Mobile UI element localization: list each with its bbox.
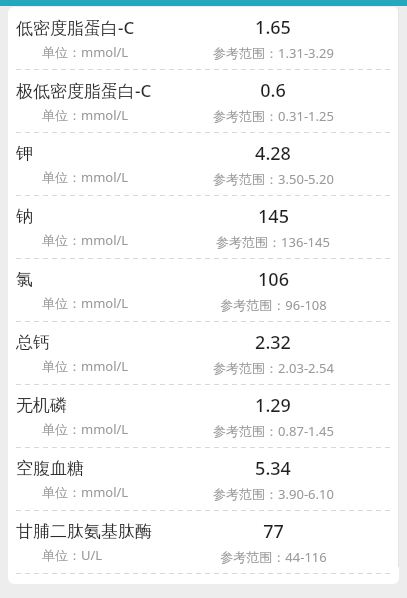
- staticText: 单位：mmol/L: [42, 231, 129, 249]
- staticText: 低密度脂蛋白-C: [16, 16, 135, 39]
- staticText: 参考范围：3.50-5.20: [213, 170, 334, 188]
- staticText: 单位：mmol/L: [42, 43, 129, 61]
- staticText: 参考范围：136-145: [216, 233, 330, 251]
- staticText: 单位：mmol/L: [42, 106, 129, 124]
- staticText: 参考范围：0.31-1.25: [213, 107, 334, 125]
- button[interactable]: 总钙: [8, 322, 399, 385]
- staticText: 5.34: [255, 456, 291, 481]
- button[interactable]: 氯: [8, 259, 399, 322]
- button[interactable]: 无机磷: [8, 385, 399, 448]
- staticText: 参考范围：96-108: [220, 296, 327, 314]
- staticText: 氯: [16, 269, 33, 290]
- button[interactable]: 钾: [8, 133, 399, 196]
- staticText: 0.6: [260, 78, 286, 103]
- staticText: 单位：U/L: [42, 546, 103, 564]
- staticText: 单位：mmol/L: [42, 420, 129, 438]
- staticText: 1.65: [255, 15, 291, 40]
- staticText: 空腹血糖: [16, 458, 84, 479]
- staticText: 单位：mmol/L: [42, 294, 129, 312]
- button[interactable]: 钠: [8, 196, 399, 259]
- staticText: 参考范围：2.03-2.54: [213, 359, 334, 377]
- staticText: 极低密度脂蛋白-C: [16, 79, 152, 102]
- button[interactable]: 极低密度脂蛋白-C: [8, 70, 399, 133]
- staticText: 参考范围：3.90-6.10: [213, 485, 334, 503]
- staticText: 参考范围：1.31-3.29: [213, 44, 334, 62]
- staticText: 1.29: [255, 393, 291, 418]
- button[interactable]: 低密度脂蛋白-C: [8, 7, 399, 70]
- staticText: 4.28: [255, 141, 291, 166]
- staticText: 钠: [16, 206, 33, 227]
- staticText: 总钙: [16, 332, 50, 353]
- staticText: 145: [258, 204, 289, 229]
- staticText: 甘脯二肽氨基肽酶: [16, 521, 152, 542]
- staticText: 106: [258, 267, 289, 292]
- button[interactable]: 空腹血糖: [8, 448, 399, 511]
- staticText: 单位：mmol/L: [42, 168, 129, 186]
- staticText: 单位：mmol/L: [42, 357, 129, 375]
- staticText: 参考范围：0.87-1.45: [213, 422, 334, 440]
- staticText: 参考范围：44-116: [220, 548, 327, 566]
- staticText: 2.32: [255, 330, 291, 355]
- staticText: 钾: [16, 143, 33, 164]
- staticText: 无机磷: [16, 395, 67, 416]
- staticText: 77: [263, 519, 284, 544]
- button[interactable]: 甘脯二肽氨基肽酶: [8, 511, 399, 574]
- staticText: 单位：mmol/L: [42, 483, 129, 501]
